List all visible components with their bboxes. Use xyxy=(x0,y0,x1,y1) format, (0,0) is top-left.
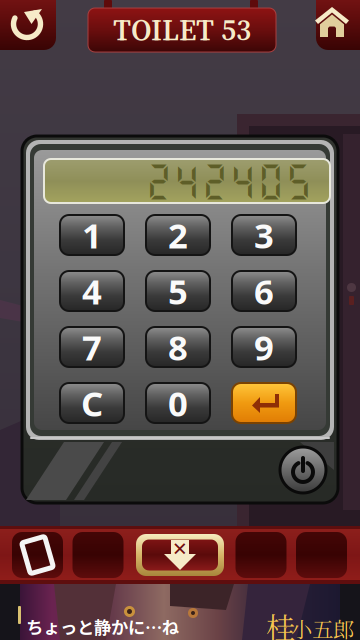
staticText: 4 xyxy=(82,268,102,314)
button[interactable]: Home xyxy=(304,0,360,50)
button[interactable]: 6 xyxy=(232,271,296,311)
button[interactable]: Item slot xyxy=(72,532,123,578)
button[interactable]: Restart xyxy=(0,0,56,50)
staticText: 小五郎 xyxy=(291,613,354,640)
staticText: 5 xyxy=(168,268,188,314)
button[interactable]: Enter xyxy=(232,383,296,423)
button[interactable]: Power xyxy=(280,447,326,493)
button[interactable]: 2 xyxy=(146,215,210,255)
staticText: C xyxy=(81,380,103,426)
button[interactable]: Item slot xyxy=(12,532,63,578)
button[interactable]: C xyxy=(60,383,124,423)
staticText: 0 xyxy=(168,380,188,426)
button[interactable]: 9 xyxy=(232,327,296,367)
staticText: 6 xyxy=(254,268,274,314)
button[interactable]: 8 xyxy=(146,327,210,367)
staticText: 242405 xyxy=(145,159,313,203)
button[interactable]: Put away item xyxy=(136,534,224,576)
staticText: ✕ xyxy=(172,538,188,560)
button[interactable]: 1 xyxy=(60,215,124,255)
button[interactable]: 0 xyxy=(146,383,210,423)
button[interactable]: Item slot xyxy=(296,532,347,578)
staticText: 桂 xyxy=(266,605,295,640)
staticText: 7 xyxy=(82,324,102,370)
button[interactable]: 4 xyxy=(60,271,124,311)
button[interactable]: 7 xyxy=(60,327,124,367)
button[interactable]: 5 xyxy=(146,271,210,311)
button[interactable]: Item slot xyxy=(235,532,286,578)
staticText: 9 xyxy=(254,324,274,370)
staticText: 1 xyxy=(82,212,102,258)
staticText: 8 xyxy=(168,324,188,370)
staticText: 2 xyxy=(168,212,188,258)
button[interactable]: 3 xyxy=(232,215,296,255)
staticText: TOILET 53 xyxy=(113,10,251,50)
staticText: ちょっと静かに…ね xyxy=(26,614,179,639)
staticText: 3 xyxy=(254,212,274,258)
